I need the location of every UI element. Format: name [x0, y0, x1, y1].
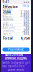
staticText: -200: [22, 29, 29, 32]
staticText: Support plan: [2, 18, 13, 25]
staticText: Design retainer: [2, 7, 12, 18]
staticText: 320: [23, 20, 29, 23]
staticText: 460: [23, 23, 29, 26]
staticText: SAVE 20% ON ANNUAL BILLING: [5, 53, 27, 60]
staticText: Learn more: [7, 68, 24, 71]
staticText: 2,400: [20, 14, 29, 17]
staticText: Seats x 4: [2, 23, 13, 26]
button[interactable]: Back: [2, 4, 7, 7]
staticText: Back: [2, 4, 7, 7]
staticText: 90: [25, 26, 29, 29]
staticText: 304: [23, 32, 29, 35]
staticText: 4,754: [20, 35, 29, 41]
staticText: Total: [2, 35, 12, 41]
staticText: Hosting: [2, 17, 13, 20]
staticText: Development: [2, 12, 12, 19]
staticText: Help: [22, 4, 29, 7]
button[interactable]: Learn more: [7, 68, 24, 71]
staticText: ▪▪▪: [23, 0, 29, 3]
staticText: 9:41: [2, 0, 9, 4]
staticText: Add-ons: [2, 26, 14, 29]
staticText: Discount: [2, 29, 14, 32]
staticText: Tax 8%: [2, 32, 10, 35]
staticText: 1,200: [20, 11, 29, 14]
staticText: Invoice 2184: [2, 4, 17, 14]
button[interactable]: Pay invoice: [2, 47, 29, 51]
staticText: Pay invoice: [8, 48, 24, 51]
button[interactable]: Help: [22, 4, 29, 7]
staticText: 180: [23, 17, 29, 20]
staticText: Switch today and get two months free: [2, 61, 30, 68]
